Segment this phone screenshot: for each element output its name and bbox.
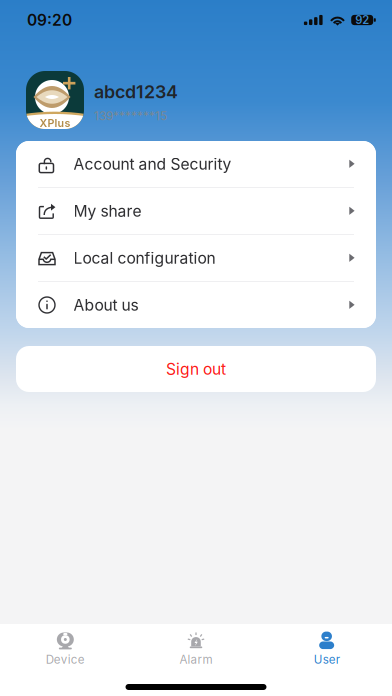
button[interactable]: User — [261, 624, 392, 673]
button[interactable]: About us — [16, 282, 376, 328]
button[interactable]: Account and Security — [16, 141, 376, 187]
button[interactable]: Sign out — [16, 346, 376, 392]
button[interactable]: My share — [16, 188, 376, 234]
staticText: abcd1234 — [94, 81, 178, 103]
staticText: Account and Security — [73, 155, 231, 173]
staticText: XPlus — [39, 116, 70, 129]
staticText: Local configuration — [73, 249, 215, 267]
staticText: Sign out — [166, 360, 226, 378]
staticText: My share — [73, 202, 141, 220]
staticText: 139*******15 — [94, 109, 167, 123]
staticText: User — [314, 652, 340, 666]
button[interactable]: Local configuration — [16, 235, 376, 281]
button[interactable]: Alarm — [131, 624, 261, 673]
staticText: 09:20 — [27, 11, 72, 29]
button[interactable]: Device — [0, 624, 131, 673]
staticText: Alarm — [179, 652, 212, 666]
staticText: 92 — [355, 13, 369, 27]
staticText: Device — [46, 652, 85, 666]
staticText: About us — [73, 296, 138, 314]
